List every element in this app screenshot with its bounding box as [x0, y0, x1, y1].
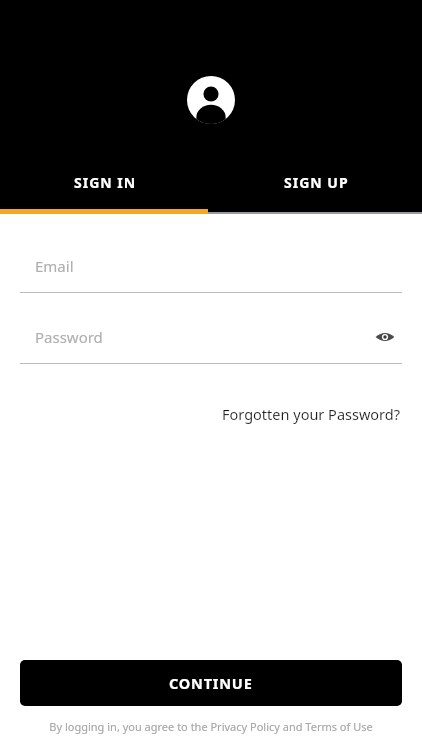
button[interactable]: CONTINUE: [20, 660, 402, 706]
button[interactable]: SIGN IN: [0, 150, 211, 214]
button[interactable]: Show password: [368, 320, 402, 354]
button[interactable]: SIGN UP: [211, 150, 422, 214]
staticText: Email: [35, 256, 74, 276]
button[interactable]: Email: [20, 240, 402, 292]
staticText: SIGN IN: [74, 173, 137, 192]
button[interactable]: Password: [20, 311, 402, 363]
staticText: CONTINUE: [169, 673, 253, 693]
other: Account avatar: [187, 76, 235, 124]
staticText: SIGN UP: [284, 173, 349, 192]
staticText: Password: [35, 327, 103, 347]
staticText: Forgotten your Password?: [222, 404, 400, 424]
button[interactable]: Forgotten your Password?: [220, 400, 402, 428]
staticText: By logging in, you agree to the Privacy …: [49, 719, 373, 734]
